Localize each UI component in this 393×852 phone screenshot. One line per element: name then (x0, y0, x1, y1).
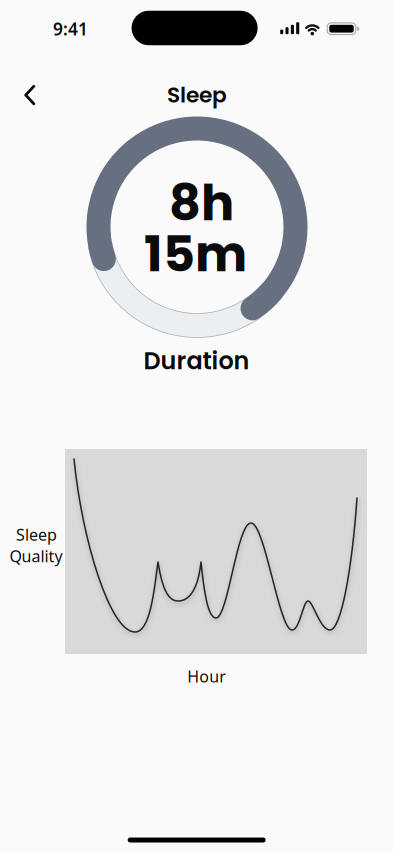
staticText: Quality (9, 545, 62, 567)
staticText: Sleep (16, 524, 57, 545)
button[interactable]: Back (8, 73, 52, 117)
staticText: Duration (143, 344, 249, 378)
staticText: 9:41 (53, 17, 88, 40)
staticText: Hour (187, 666, 226, 687)
staticText: Sleep (167, 80, 227, 110)
staticText: 8h (169, 168, 234, 237)
staticText: 15m (144, 219, 247, 288)
